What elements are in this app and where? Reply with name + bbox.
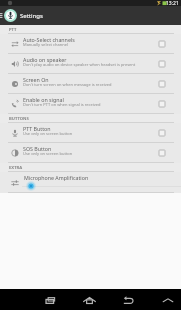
staticText: Manually select channel <box>23 42 68 47</box>
button[interactable]: Enable on signal <box>0 94 181 114</box>
staticText: 13:21 <box>166 0 179 6</box>
staticText: Use only on screen button <box>23 151 73 156</box>
staticText: Settings <box>20 12 43 20</box>
staticText: Microphone Amplification <box>24 174 89 181</box>
button[interactable]: Home <box>83 294 96 307</box>
button[interactable]: SOS Button <box>0 143 181 163</box>
staticText: PTT Button <box>23 125 51 132</box>
staticText: Screen On <box>23 76 49 83</box>
button[interactable]: Navigation menu <box>0 6 4 25</box>
button[interactable]: PTT Button <box>0 123 181 143</box>
staticText: Use only on screen button <box>23 131 73 136</box>
staticText: PTT <box>9 27 17 33</box>
staticText: Auto-Select channels <box>23 36 75 43</box>
staticText: BUTTONS <box>9 116 29 122</box>
staticText: Don't play audio on device speaker when … <box>23 62 136 67</box>
button[interactable]: Auto-Select channels <box>0 34 181 54</box>
staticText: Enable on signal <box>23 96 64 103</box>
button[interactable]: Back <box>122 294 135 307</box>
staticText: EXTRA <box>9 165 23 171</box>
staticText: Don't turn screen on when message is rec… <box>23 82 112 87</box>
button[interactable]: Audio on speaker <box>0 54 181 74</box>
staticText: Audio on speaker <box>23 56 67 63</box>
button[interactable]: Recent apps <box>45 294 58 307</box>
button[interactable]: Hide navigation bar <box>162 295 174 307</box>
staticText: Don't turn PTT on when signal is receive… <box>23 102 101 107</box>
staticText: SOS Button <box>23 145 52 152</box>
button[interactable]: Microphone Amplification <box>0 172 181 193</box>
button[interactable]: Screen On <box>0 74 181 94</box>
